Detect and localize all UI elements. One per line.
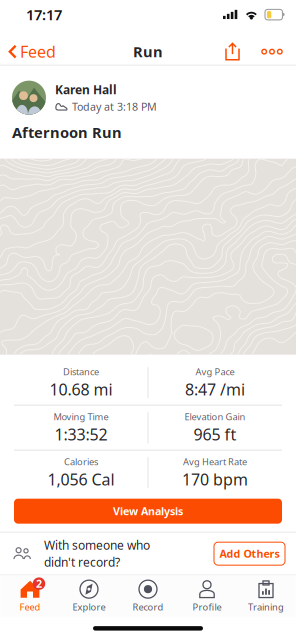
staticText: didn't record? — [44, 554, 120, 570]
staticText: Moving Time — [53, 410, 108, 423]
staticText: 170 bpm — [182, 469, 248, 490]
staticText: Training — [248, 601, 284, 613]
staticText: 17:17 — [26, 5, 62, 24]
staticText: Calories — [64, 455, 98, 468]
staticText: Elevation Gain — [184, 410, 245, 423]
staticText: 10.68 mi — [49, 379, 112, 400]
staticText: Karen Hall — [55, 82, 117, 97]
button[interactable]: More options — [251, 44, 289, 60]
staticText: With someone who — [44, 537, 150, 553]
staticText: Afternoon Run — [12, 123, 122, 142]
button[interactable]: Profile — [177, 577, 236, 615]
staticText: Today at 3:18 PM — [72, 99, 157, 114]
staticText: 2 — [36, 577, 42, 591]
button[interactable]: View Analysis — [14, 499, 282, 524]
button[interactable]: Add Others — [214, 542, 285, 565]
button[interactable]: Karen Hall profile — [12, 81, 46, 115]
staticText: Feed — [20, 41, 56, 62]
staticText: Explore — [72, 601, 105, 613]
staticText: 965 ft — [193, 424, 236, 445]
button[interactable]: Explore — [59, 577, 118, 615]
button[interactable]: Training — [236, 577, 295, 615]
button[interactable]: Feed — [0, 38, 64, 66]
staticText: View Analysis — [113, 504, 183, 518]
staticText: Avg Heart Rate — [183, 455, 247, 468]
staticText: Profile — [192, 601, 221, 613]
button[interactable]: Share — [216, 42, 251, 61]
staticText: 8:47 /mi — [185, 379, 245, 400]
staticText: Distance — [63, 365, 99, 378]
staticText: 1,056 Cal — [47, 469, 114, 490]
staticText: Avg Pace — [195, 365, 234, 378]
staticText: Record — [132, 601, 163, 613]
staticText: Feed — [19, 601, 40, 613]
staticText: Run — [133, 42, 163, 61]
staticText: Add Others — [219, 547, 279, 561]
staticText: 1:33:52 — [54, 424, 107, 445]
button[interactable]: Record — [118, 577, 177, 615]
button[interactable]: 2 — [0, 577, 59, 615]
